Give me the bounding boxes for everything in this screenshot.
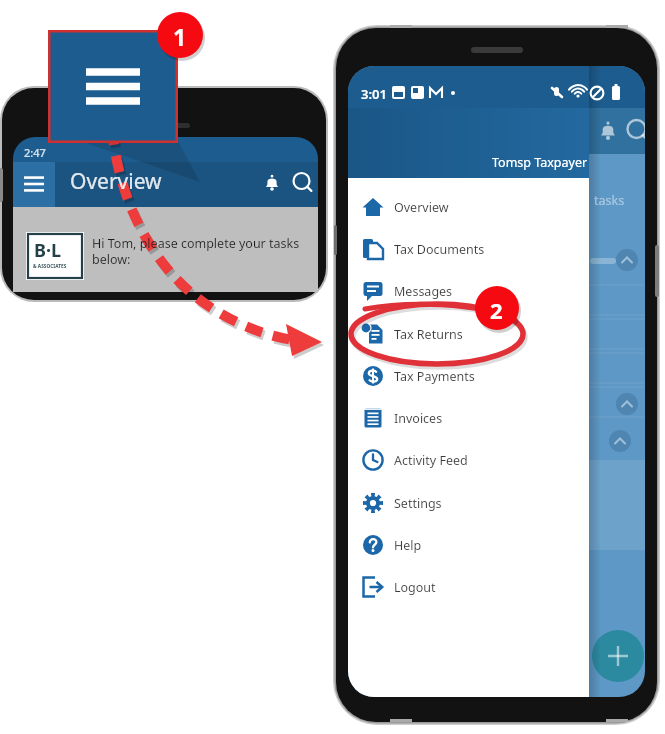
staticText: Tax Documents	[394, 241, 485, 258]
staticText: 2	[490, 295, 503, 325]
staticText: 2:47	[24, 145, 46, 160]
staticText: Hi Tom, please complete your tasks	[92, 235, 300, 252]
staticText: Overview	[70, 167, 162, 196]
button[interactable]	[348, 188, 589, 226]
button[interactable]	[348, 230, 589, 268]
staticText: 3:01	[361, 85, 387, 103]
staticText: Tax Returns	[394, 326, 463, 343]
button[interactable]	[348, 357, 589, 395]
staticText: Settings	[394, 495, 442, 512]
button[interactable]	[348, 315, 589, 353]
button[interactable]	[348, 526, 589, 564]
button[interactable]	[348, 568, 589, 606]
button[interactable]: Add	[592, 630, 644, 682]
button[interactable]: Search	[623, 113, 654, 149]
staticText: Logout	[394, 579, 436, 596]
staticText: B·L	[34, 238, 62, 263]
staticText: 1	[173, 21, 187, 52]
staticText: tasks	[594, 192, 625, 209]
staticText: Messages	[394, 283, 453, 300]
button[interactable]	[348, 399, 589, 437]
button[interactable]: Open navigation menu	[13, 162, 55, 207]
button[interactable]: Notifications	[592, 113, 625, 149]
staticText: Tomsp Taxpayer	[492, 154, 588, 171]
staticText: below:	[92, 251, 131, 268]
staticText: & ASSOCIATES	[33, 263, 67, 270]
staticText: Help	[394, 537, 422, 554]
staticText: Overview	[394, 199, 449, 216]
button[interactable]	[348, 441, 589, 479]
button[interactable]	[348, 484, 589, 522]
button[interactable]: Search	[289, 166, 319, 200]
staticText: Activity Feed	[394, 452, 468, 469]
staticText: Tax Payments	[394, 368, 475, 385]
button[interactable]	[348, 272, 589, 310]
button[interactable]: Notifications	[258, 166, 288, 200]
staticText: Invoices	[394, 410, 443, 427]
